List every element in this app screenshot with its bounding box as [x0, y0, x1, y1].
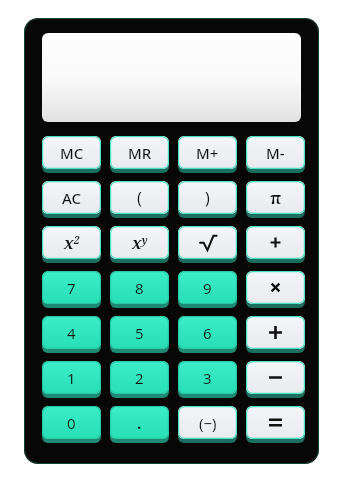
staticText: AC — [62, 188, 82, 208]
staticText: xy — [132, 232, 148, 254]
button[interactable]: 5 — [110, 316, 169, 353]
staticText: 8 — [135, 278, 144, 298]
staticText: 9 — [203, 278, 212, 298]
staticText: (−) — [199, 413, 217, 433]
staticText: M+ — [196, 143, 219, 163]
button[interactable]: 9 — [178, 271, 237, 308]
button[interactable]: AC — [42, 181, 101, 218]
staticText: π — [270, 186, 282, 209]
button[interactable]: 6 — [178, 316, 237, 353]
staticText: ) — [205, 187, 210, 209]
staticText: 5 — [135, 323, 144, 343]
button[interactable]: Add — [246, 316, 305, 353]
staticText: 1 — [67, 368, 76, 388]
button[interactable]: Plus small — [246, 226, 305, 263]
button[interactable]: 2 — [110, 361, 169, 398]
button[interactable]: x squared — [42, 226, 101, 263]
button[interactable]: 8 — [110, 271, 169, 308]
button[interactable]: 3 — [178, 361, 237, 398]
button[interactable]: M+ — [178, 136, 237, 173]
staticText: MC — [60, 143, 84, 163]
button[interactable]: ( — [110, 181, 169, 218]
button[interactable]: π — [246, 181, 305, 218]
button[interactable]: . — [110, 406, 169, 443]
button[interactable]: MR — [110, 136, 169, 173]
staticText: . — [137, 413, 142, 433]
button[interactable]: 0 — [42, 406, 101, 443]
button[interactable]: 4 — [42, 316, 101, 353]
staticText: 6 — [203, 323, 212, 343]
staticText: M- — [266, 143, 285, 163]
button[interactable]: Multiply — [246, 271, 305, 308]
staticText: ( — [137, 187, 142, 209]
staticText: 7 — [67, 278, 76, 298]
button[interactable]: Subtract — [246, 361, 305, 398]
button[interactable]: ) — [178, 181, 237, 218]
button[interactable]: Negate — [178, 406, 237, 443]
staticText: x2 — [64, 232, 80, 254]
button[interactable]: M- — [246, 136, 305, 173]
button[interactable]: Display — [42, 33, 301, 122]
button[interactable]: Square root — [178, 226, 237, 263]
button[interactable]: x to the power y — [110, 226, 169, 263]
staticText: 3 — [203, 368, 212, 388]
button[interactable]: 1 — [42, 361, 101, 398]
staticText: 0 — [67, 413, 76, 433]
button[interactable]: MC — [42, 136, 101, 173]
staticText: MR — [128, 143, 152, 163]
staticText: 4 — [67, 323, 76, 343]
staticText: 2 — [135, 368, 144, 388]
button[interactable]: Equals — [246, 406, 305, 443]
button[interactable]: 7 — [42, 271, 101, 308]
